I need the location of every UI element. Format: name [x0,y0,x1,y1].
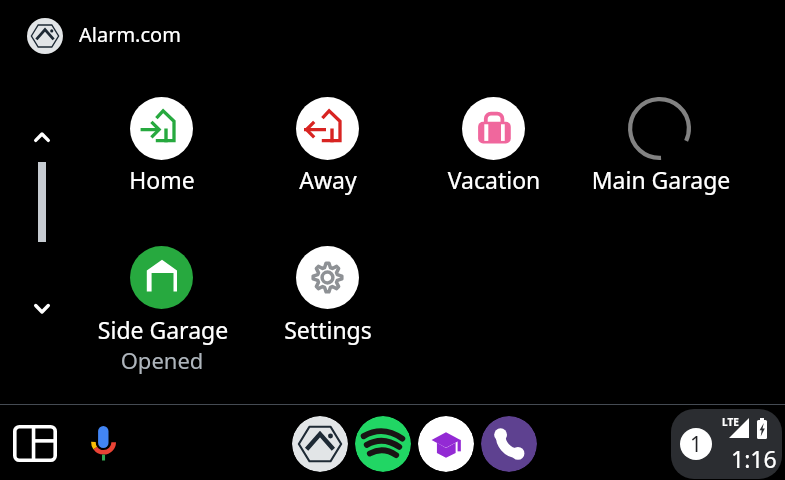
button[interactable]: Spotify [355,416,411,472]
staticText: Alarm.com [79,21,181,48]
staticText: Side Garage [68,314,258,345]
button[interactable]: Main Garage loading [628,97,691,160]
button[interactable] [462,97,525,160]
staticText: Vacation [399,164,589,195]
button[interactable]: Phone [481,416,537,472]
button[interactable] [296,246,359,309]
button[interactable]: Alarm.com [27,18,181,54]
button[interactable]: 1 [671,409,782,479]
button[interactable]: Alarm.com [292,416,348,472]
button[interactable] [296,97,359,160]
staticText: Home [67,164,257,195]
button[interactable]: Classroom [418,416,474,472]
staticText: 1 [690,430,703,459]
staticText: Main Garage [566,164,756,195]
button[interactable]: Dashboard [9,420,61,466]
button[interactable]: Assistant [85,422,121,464]
button[interactable] [130,246,193,309]
button[interactable]: Scroll [26,124,58,320]
staticText: Away [233,164,423,195]
staticText: 1:16 [731,443,777,474]
staticText: Opened [62,345,262,375]
staticText: Settings [233,314,423,345]
button[interactable] [130,97,193,160]
staticText: LTE [722,415,739,429]
